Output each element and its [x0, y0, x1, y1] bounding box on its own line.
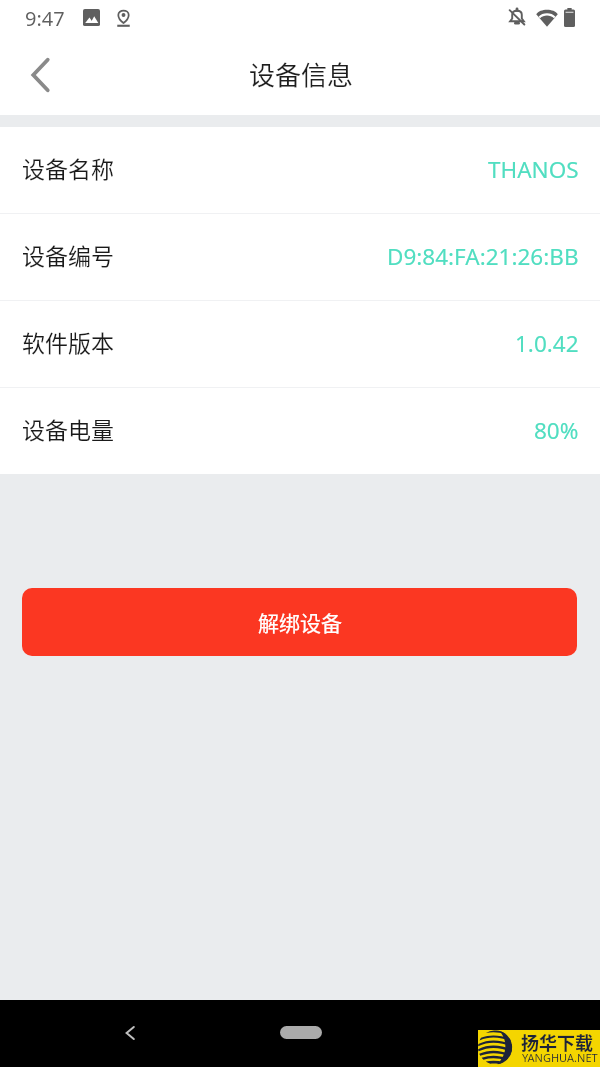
button[interactable]: 设备名称 — [0, 127, 600, 213]
staticText: 扬华下载 — [521, 1029, 593, 1055]
button[interactable]: Back — [4, 45, 76, 105]
button[interactable]: Back — [110, 1013, 150, 1053]
staticText: 设备电量 — [22, 412, 114, 445]
button[interactable]: Home — [280, 1026, 322, 1039]
button[interactable]: 软件版本 — [0, 301, 600, 387]
staticText: YANGHUA.NET — [522, 1050, 598, 1065]
staticText: 9:47 — [25, 5, 65, 32]
staticText: THANOS — [488, 154, 579, 185]
button[interactable]: 设备电量 — [0, 388, 600, 474]
button[interactable]: 解绑设备 — [22, 588, 577, 656]
staticText: 1.0.42 — [515, 328, 579, 359]
staticText: 设备编号 — [22, 238, 114, 271]
staticText: 解绑设备 — [258, 607, 342, 637]
staticText: 设备名称 — [22, 151, 114, 184]
staticText: 80% — [534, 415, 579, 446]
staticText: D9:84:FA:21:26:BB — [387, 241, 579, 272]
staticText: 设备信息 — [249, 55, 354, 93]
button[interactable]: 设备编号 — [0, 214, 600, 300]
staticText: 软件版本 — [22, 325, 114, 358]
